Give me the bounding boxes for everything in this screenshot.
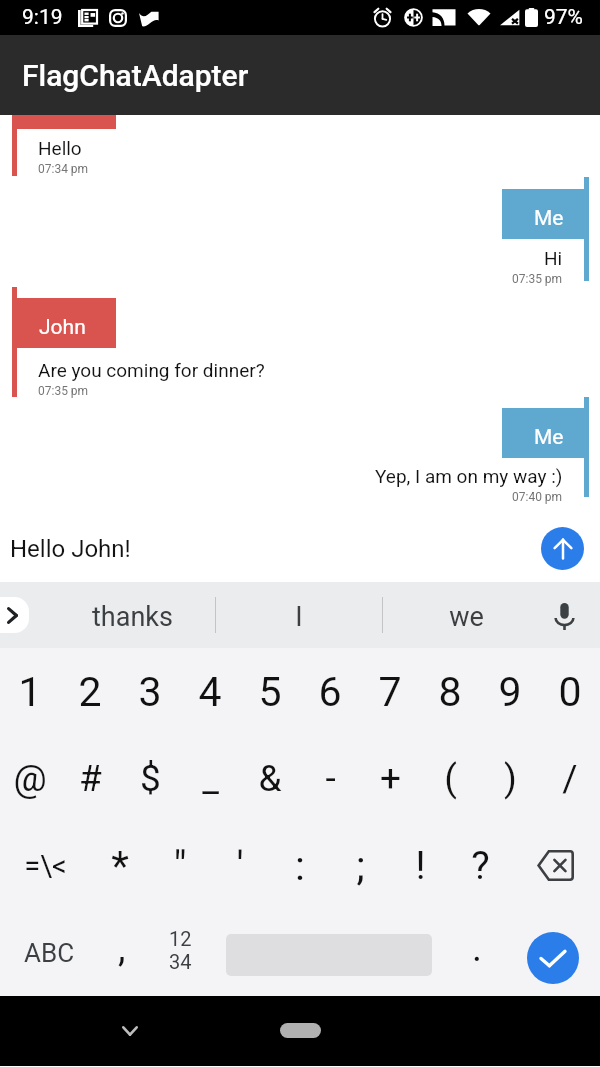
- staticText: *: [111, 842, 129, 890]
- staticText: 07:35 pm: [512, 272, 563, 286]
- button[interactable]: 7: [360, 648, 420, 735]
- button[interactable]: Me: [0, 115, 600, 515]
- button[interactable]: 3: [120, 648, 180, 735]
- staticText: 5: [258, 668, 282, 716]
- staticText: :: [295, 842, 305, 890]
- button[interactable]: .: [437, 909, 499, 996]
- button[interactable]: $: [120, 735, 180, 822]
- button[interactable]: 9: [480, 648, 540, 735]
- staticText: Me: [534, 206, 564, 231]
- staticText: 07:34 pm: [38, 162, 89, 176]
- button[interactable]: Voice input: [547, 599, 581, 633]
- staticText: &: [258, 757, 282, 800]
- button[interactable]: =\<: [0, 822, 90, 909]
- button[interactable]: ,: [96, 909, 158, 996]
- button[interactable]: @: [0, 735, 60, 822]
- button[interactable]: ABC: [0, 909, 96, 996]
- button[interactable]: *: [90, 822, 150, 909]
- staticText: we: [449, 601, 484, 633]
- button[interactable]: !: [390, 822, 450, 909]
- button[interactable]: 5: [240, 648, 300, 735]
- button[interactable]: Enter: [527, 932, 579, 984]
- staticText: John: [39, 315, 86, 340]
- staticText: 1: [18, 668, 42, 716]
- button[interactable]: Numbers: [158, 909, 220, 996]
- button[interactable]: +: [360, 735, 420, 822]
- button[interactable]: _: [180, 735, 240, 822]
- button[interactable]: 6: [300, 648, 360, 735]
- button[interactable]: John: [0, 115, 600, 515]
- button[interactable]: I: [216, 582, 382, 648]
- staticText: Hi: [544, 247, 563, 269]
- staticText: Hello John!: [10, 535, 131, 563]
- staticText: thanks: [92, 601, 173, 633]
- button[interactable]: 0: [540, 648, 600, 735]
- staticText: FlagChatAdapter: [22, 58, 249, 93]
- staticText: 6: [318, 668, 342, 716]
- button[interactable]: Hide keyboard: [110, 1011, 150, 1051]
- button[interactable]: Home: [280, 1023, 321, 1038]
- button[interactable]: /: [540, 735, 600, 822]
- staticText: 12: [169, 927, 192, 950]
- staticText: 7: [378, 668, 402, 716]
- staticText: ?: [471, 843, 490, 889]
- staticText: #: [79, 757, 102, 800]
- staticText: 0: [558, 668, 582, 716]
- staticText: (: [444, 757, 457, 800]
- staticText: !: [415, 843, 426, 889]
- staticText: ;: [356, 842, 365, 890]
- button[interactable]: ;: [330, 822, 390, 909]
- button[interactable]: FlagChatAdapter: [0, 35, 600, 115]
- staticText: 9: [498, 668, 522, 716]
- staticText: Hello: [38, 137, 82, 159]
- staticText: 07:35 pm: [38, 384, 89, 398]
- staticText: /: [562, 757, 578, 800]
- staticText: 97%: [544, 5, 583, 30]
- button[interactable]: thanks: [49, 582, 215, 648]
- button[interactable]: 2: [60, 648, 120, 735]
- staticText: Me: [534, 425, 564, 450]
- button[interactable]: -: [300, 735, 360, 822]
- staticText: Are you coming for dinner?: [38, 359, 265, 381]
- staticText: 8: [438, 668, 462, 716]
- staticText: @: [13, 757, 47, 800]
- button[interactable]: (: [420, 735, 480, 822]
- staticText: 07:40 pm: [512, 490, 563, 504]
- button[interactable]: we: [383, 582, 549, 648]
- button[interactable]: ": [150, 822, 210, 909]
- staticText: Yep, I am on my way :): [375, 465, 563, 487]
- staticText: _: [202, 757, 219, 800]
- staticText: $: [140, 757, 161, 800]
- button[interactable]: ': [210, 822, 270, 909]
- button[interactable]: 8: [420, 648, 480, 735]
- staticText: 3: [138, 668, 162, 716]
- staticText: ": [173, 842, 187, 890]
- button[interactable]: Backspace: [510, 822, 600, 909]
- button[interactable]: More suggestions: [0, 597, 29, 633]
- staticText: -: [325, 757, 336, 800]
- staticText: 9:19: [22, 5, 63, 30]
- button[interactable]: #: [60, 735, 120, 822]
- button[interactable]: Me: [0, 115, 600, 515]
- staticText: =\<: [24, 849, 67, 883]
- staticText: ': [236, 842, 244, 890]
- staticText: ): [504, 757, 517, 800]
- staticText: ,: [118, 926, 126, 971]
- staticText: 4: [198, 668, 222, 716]
- button[interactable]: 1: [0, 648, 60, 735]
- button[interactable]: &: [240, 735, 300, 822]
- staticText: +: [380, 757, 401, 800]
- button[interactable]: Send: [541, 527, 584, 570]
- staticText: ABC: [24, 938, 75, 968]
- button[interactable]: :: [270, 822, 330, 909]
- staticText: 34: [169, 950, 192, 973]
- staticText: .: [472, 926, 483, 971]
- staticText: 2: [78, 668, 102, 716]
- staticText: I: [295, 601, 303, 633]
- button[interactable]: ): [480, 735, 540, 822]
- button[interactable]: ?: [450, 822, 510, 909]
- button[interactable]: Hello: [0, 115, 600, 515]
- button[interactable]: 4: [180, 648, 240, 735]
